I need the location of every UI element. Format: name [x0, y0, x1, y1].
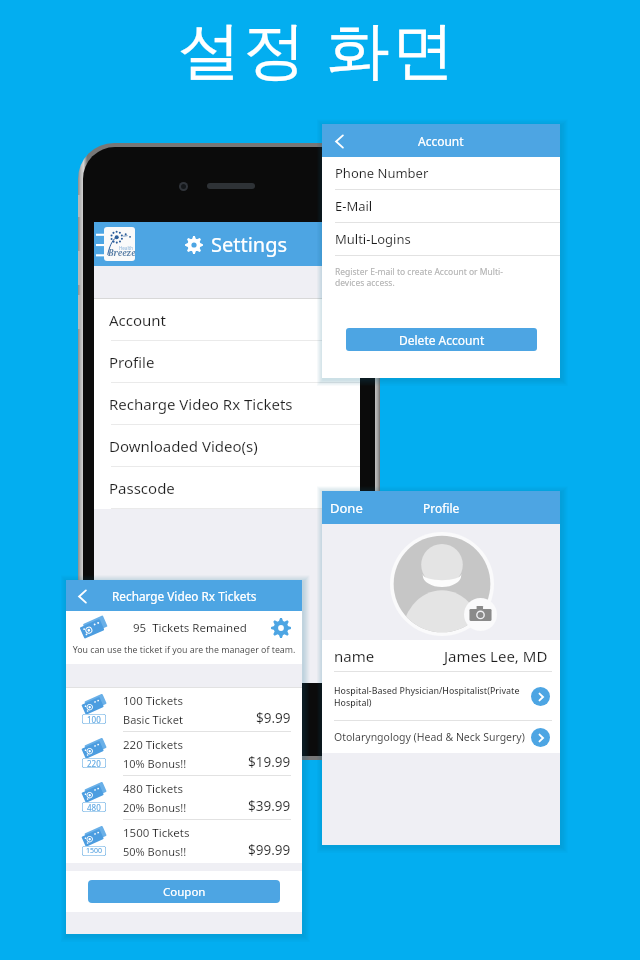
staticText: Multi-Logins: [335, 230, 411, 248]
staticText: Recharge Video Rx Tickets: [109, 394, 293, 414]
staticText: Phone Number: [335, 164, 429, 182]
staticText: E-Mail: [335, 197, 373, 215]
staticText: You can use the ticket if you are the ma…: [66, 644, 302, 656]
button[interactable]: Done: [322, 491, 371, 524]
staticText: $19.99: [248, 753, 291, 771]
button[interactable]: Downloaded Video(s): [94, 425, 360, 467]
button[interactable]: Multi-Logins: [322, 223, 560, 255]
staticText: Downloaded Video(s): [109, 436, 258, 456]
staticText: Delete Account: [399, 332, 485, 348]
staticText: 95 Tickets Remained: [133, 620, 247, 636]
staticText: James Lee, MD: [444, 646, 548, 666]
staticText: 1500 Tickets: [123, 825, 190, 841]
button[interactable]: 220: [66, 732, 302, 776]
button[interactable]: 1500: [66, 820, 302, 863]
button[interactable]: E-Mail: [322, 190, 560, 222]
staticText: name: [334, 646, 375, 666]
staticText: Account: [109, 310, 167, 330]
staticText: Otolaryngology (Head & Neck Surgery): [334, 730, 527, 744]
button[interactable]: Back: [69, 583, 95, 609]
button[interactable]: Phone Number: [322, 157, 560, 189]
staticText: Health: [119, 245, 133, 251]
button[interactable]: Profile: [94, 341, 360, 383]
button[interactable]: name: [322, 640, 560, 671]
button[interactable]: Passcode: [94, 467, 360, 509]
staticText: 480 Tickets: [123, 781, 183, 797]
staticText: Passcode: [109, 478, 175, 498]
button[interactable]: Coupon: [88, 880, 280, 903]
button[interactable]: Settings: [271, 618, 291, 638]
staticText: Coupon: [163, 884, 206, 900]
button[interactable]: 480: [66, 776, 302, 820]
staticText: Breeze: [108, 247, 135, 258]
staticText: Hospital-Based Physician/Hospitalist(Pri…: [334, 685, 527, 708]
button[interactable]: Delete Account: [346, 328, 537, 351]
staticText: 20% Bonus!!: [123, 800, 187, 815]
button[interactable]: 100: [66, 688, 302, 732]
staticText: Profile: [423, 500, 460, 516]
staticText: 100: [87, 714, 101, 724]
staticText: Register E-mail to create Account or Mul…: [335, 266, 520, 288]
button[interactable]: Change photo: [464, 598, 497, 631]
staticText: Settings: [211, 231, 288, 258]
staticText: Basic Ticket: [123, 712, 183, 727]
staticText: $39.99: [248, 797, 291, 815]
staticText: 설정 화면: [178, 5, 457, 91]
staticText: 100 Tickets: [123, 693, 183, 709]
staticText: 220: [87, 758, 101, 768]
button[interactable]: Recharge Video Rx Tickets: [94, 383, 360, 425]
staticText: $99.99: [248, 841, 291, 859]
staticText: 50% Bonus!!: [123, 844, 187, 859]
button[interactable]: Account: [94, 299, 360, 341]
staticText: 480: [87, 802, 101, 812]
button[interactable]: Otolaryngology (Head & Neck Surgery): [322, 721, 560, 753]
staticText: Recharge Video Rx Tickets: [112, 588, 257, 604]
staticText: 10% Bonus!!: [123, 756, 187, 771]
staticText: 220 Tickets: [123, 737, 183, 753]
staticText: $9.99: [256, 709, 291, 727]
button[interactable]: Hospital-Based Physician/Hospitalist(Pri…: [322, 672, 560, 720]
staticText: Done: [330, 499, 363, 517]
button[interactable]: Back: [326, 128, 352, 154]
staticText: 1500: [86, 846, 103, 856]
staticText: Account: [418, 133, 464, 149]
staticText: Profile: [109, 352, 155, 372]
